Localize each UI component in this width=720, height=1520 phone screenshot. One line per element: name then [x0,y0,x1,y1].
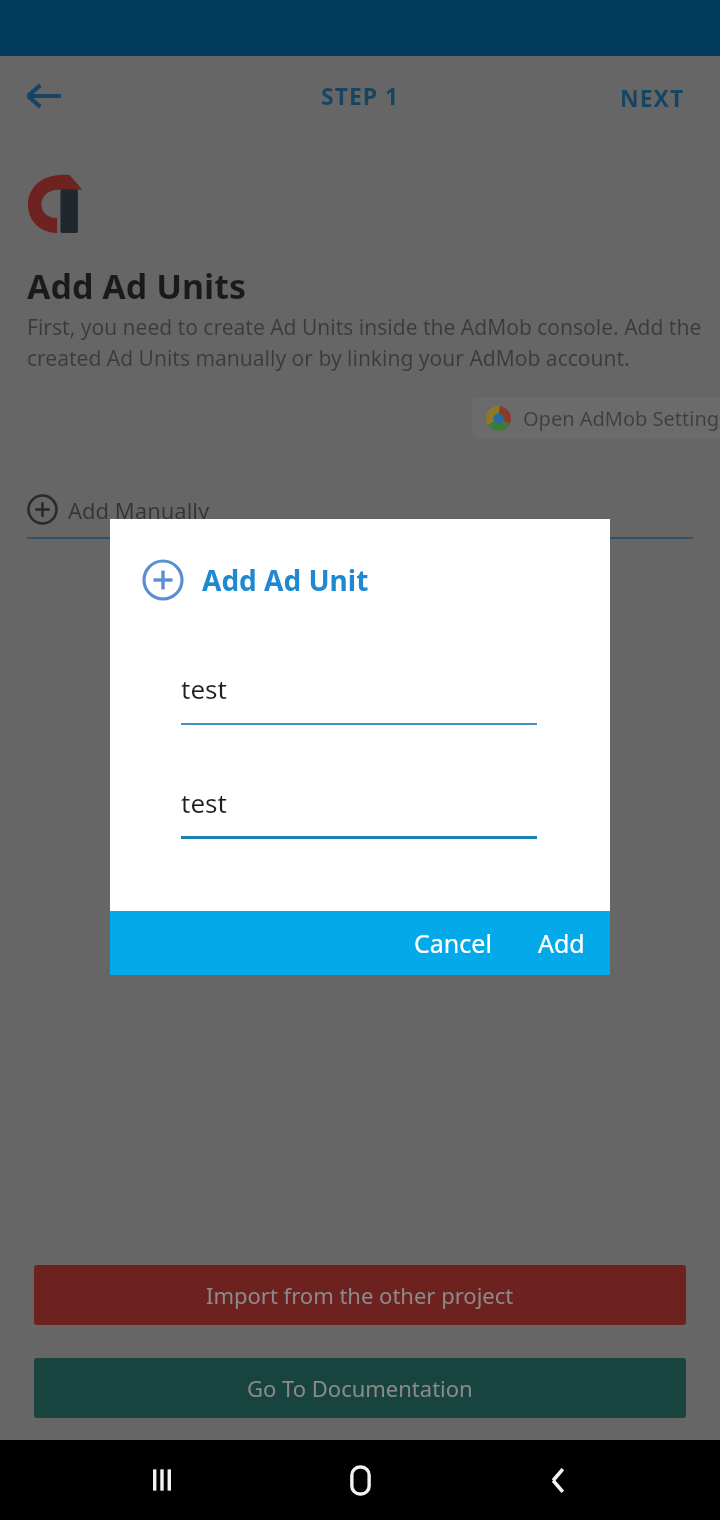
staticText: Cancel [414,926,492,960]
button[interactable]: test [181,671,537,725]
staticText: First, you need to create Ad Units insid… [27,313,702,372]
staticText: Add Manually [68,495,210,525]
staticText: NEXT [620,82,685,113]
button[interactable]: Recents [133,1451,191,1509]
button[interactable]: Back [16,68,72,124]
button[interactable]: Go To Documentation [34,1358,686,1418]
staticText: test [181,671,227,706]
button[interactable]: NEXT [608,72,697,123]
button[interactable]: Add [522,914,601,972]
button[interactable]: Add Manually [27,494,210,525]
staticText: Add Ad Units [27,263,246,309]
button[interactable]: Import from the other project [34,1265,686,1325]
staticText: STEP 1 [321,80,400,111]
button[interactable]: Open AdMob Setting [472,397,720,439]
button[interactable]: Cancel [398,914,508,972]
staticText: Go To Documentation [247,1373,473,1403]
staticText: Import from the other project [206,1280,514,1310]
button[interactable]: Home [331,1451,389,1509]
staticText: test [181,785,227,820]
staticText: Add [538,926,585,960]
staticText: Add Ad Unit [202,561,369,599]
button[interactable]: Back [529,1451,587,1509]
staticText: Open AdMob Setting [523,405,720,432]
button[interactable]: test [181,785,537,839]
